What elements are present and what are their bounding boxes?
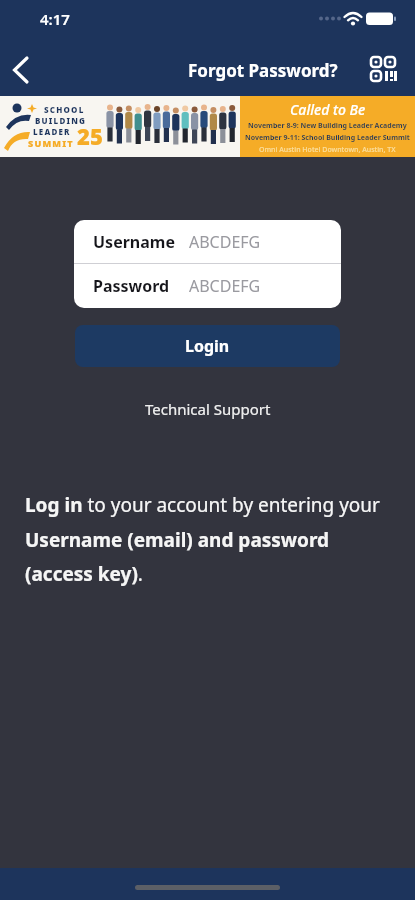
staticText: Username xyxy=(93,231,175,253)
button[interactable]: Password xyxy=(74,264,341,308)
staticText: SUMMIT xyxy=(28,137,74,149)
staticText: Called to Be xyxy=(290,100,366,119)
staticText: November 9-11: School Building Leader Su… xyxy=(245,133,410,143)
staticText: LEADER xyxy=(33,126,71,137)
staticText: 25 xyxy=(77,121,103,151)
button[interactable]: Login xyxy=(75,325,340,367)
staticText: Omni Austin Hotel Downtown, Austin, TX xyxy=(259,145,396,155)
staticText: Password xyxy=(93,275,170,297)
button[interactable]: Username xyxy=(74,220,341,263)
staticText: 4:17 xyxy=(40,9,70,29)
staticText: ABCDEFG xyxy=(189,231,261,253)
button[interactable] xyxy=(0,49,42,91)
staticText: November 8-9: New Building Leader Academ… xyxy=(248,121,407,131)
button[interactable]: SCHOOL xyxy=(0,96,415,157)
staticText: Login xyxy=(185,335,230,357)
staticText: Log in to your account by entering your … xyxy=(25,492,399,586)
staticText: BUILDING xyxy=(35,115,87,126)
staticText: SCHOOL xyxy=(44,104,85,115)
staticText: Technical Support xyxy=(145,399,271,419)
staticText: Forgot Password? xyxy=(188,59,338,82)
staticText: ABCDEFG xyxy=(189,275,261,297)
button[interactable] xyxy=(367,53,401,87)
button[interactable]: Technical Support xyxy=(145,399,271,419)
